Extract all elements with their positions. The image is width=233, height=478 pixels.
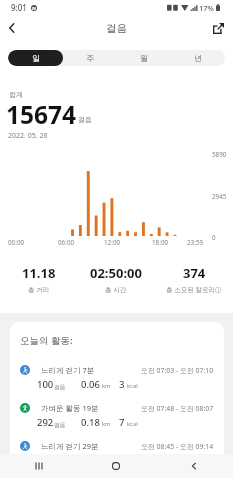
staticText: 23:59 <box>187 238 204 247</box>
staticText: W <box>32 6 36 11</box>
staticText: 0.06 <box>81 378 100 391</box>
staticText: 10 <box>119 454 130 467</box>
staticText: 가벼운 활동 19분 <box>41 403 99 413</box>
staticText: 0.18 <box>81 416 100 429</box>
staticText: kcal <box>127 420 138 428</box>
button[interactable]: Back <box>0 16 24 40</box>
button[interactable]: Recent apps <box>0 454 77 478</box>
staticText: 292 <box>37 416 54 429</box>
staticText: 15674 <box>6 98 77 131</box>
staticText: 100 <box>37 378 54 391</box>
button[interactable]: 월 <box>117 50 171 66</box>
staticText: 400 <box>37 454 54 467</box>
staticText: 374 <box>183 264 206 282</box>
button[interactable]: Share <box>205 15 231 41</box>
button[interactable]: 일 <box>8 50 63 66</box>
staticText: 일 <box>32 53 40 63</box>
staticText: 총 시간 <box>105 285 127 294</box>
staticText: 00:00 <box>8 238 25 247</box>
staticText: 걸음 <box>106 22 127 35</box>
staticText: kcal <box>127 382 138 390</box>
staticText: 오전 07:03 - 오전 07:10 <box>141 366 214 375</box>
staticText: 합계 <box>9 90 23 99</box>
staticText: 총 소모된 칼로리ⓘ <box>166 285 222 294</box>
staticText: 9:01 <box>11 2 27 13</box>
staticText: 2945 <box>212 192 227 201</box>
staticText: 총 거리 <box>28 285 50 294</box>
staticText: 오전 08:45 - 오전 09:14 <box>141 442 214 451</box>
staticText: km <box>102 382 111 390</box>
staticText: 걸음 <box>54 421 66 428</box>
staticText: 오전 07:48 - 오전 08:07 <box>141 404 214 413</box>
button[interactable]: Back <box>155 454 233 478</box>
staticText: 3 <box>119 378 125 391</box>
staticText: 17% <box>199 3 214 13</box>
staticText: 0 <box>212 233 216 242</box>
button[interactable]: 년 <box>171 50 225 66</box>
staticText: 18:00 <box>152 238 169 247</box>
staticText: 06:00 <box>58 238 75 247</box>
button[interactable]: 느리게 걷기 7분 <box>20 365 214 391</box>
staticText: 느리게 걷기 7분 <box>41 365 95 375</box>
staticText: km <box>102 420 111 428</box>
staticText: 걸음 <box>78 115 92 124</box>
staticText: 년 <box>194 53 202 63</box>
button[interactable]: Home <box>77 454 155 478</box>
button[interactable]: 02:50:00 <box>77 264 155 294</box>
staticText: 걸음 <box>54 383 66 390</box>
staticText: 2022. 05. 26 <box>8 131 48 141</box>
staticText: 주 <box>86 53 94 63</box>
staticText: 느리게 걷기 29분 <box>41 441 99 451</box>
button[interactable]: 11.18 <box>0 264 77 294</box>
staticText: 02:50:00 <box>90 264 142 282</box>
staticText: 7 <box>119 416 125 429</box>
button[interactable]: 374 <box>155 264 233 294</box>
button[interactable]: 느리게 걷기 29분 <box>20 441 214 467</box>
staticText: 5890 <box>212 150 227 159</box>
staticText: 12:00 <box>104 238 121 247</box>
staticText: 11.18 <box>22 264 56 282</box>
staticText: 오늘의 활동: <box>20 334 73 347</box>
button[interactable]: 가벼운 활동 19분 <box>20 403 214 429</box>
button[interactable]: 주 <box>63 50 117 66</box>
staticText: 월 <box>140 53 148 63</box>
